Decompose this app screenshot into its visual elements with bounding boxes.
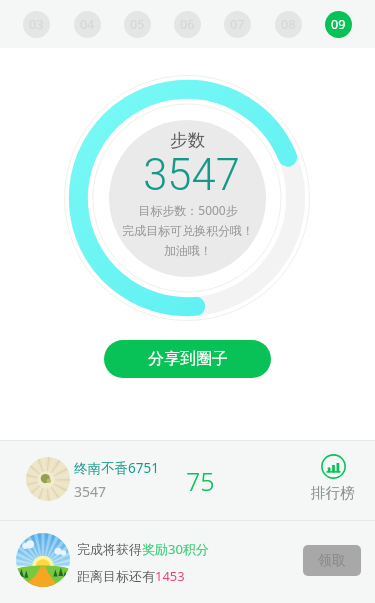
button[interactable]: 09	[325, 11, 352, 38]
button[interactable]: 08	[275, 11, 302, 38]
button[interactable]: 06	[174, 11, 201, 38]
button[interactable]: 分享到圈子	[104, 340, 271, 378]
button[interactable]: 05	[124, 11, 151, 38]
staticText: 加油哦！	[164, 243, 212, 258]
staticText: 排行榜	[311, 484, 355, 502]
button[interactable]: 04	[74, 11, 101, 38]
button[interactable]: 终南不香6751	[0, 440, 375, 520]
staticText: 完成将获得奖励30积分	[77, 540, 209, 558]
staticText: 05	[130, 16, 145, 33]
staticText: 目标步数：5000步	[138, 202, 238, 218]
staticText: 3547	[74, 482, 107, 501]
staticText: 分享到圈子	[148, 349, 228, 369]
staticText: 领取	[318, 552, 346, 570]
staticText: 09	[331, 16, 346, 33]
staticText: 04	[80, 16, 95, 33]
staticText: 03	[29, 16, 44, 33]
staticText: 3547	[113, 150, 266, 201]
staticText: 07	[230, 16, 245, 33]
button[interactable]: 领取	[303, 545, 361, 576]
staticText: 75	[186, 464, 215, 498]
button[interactable]: 07	[224, 11, 251, 38]
staticText: 06	[180, 16, 195, 33]
staticText: 终南不香6751	[74, 459, 159, 477]
button[interactable]: 03	[23, 11, 50, 38]
staticText: 步数	[109, 129, 266, 151]
staticText: 完成目标可兑换积分哦！	[122, 223, 254, 238]
staticText: 08	[281, 16, 296, 33]
staticText: 距离目标还有1453	[77, 567, 185, 585]
